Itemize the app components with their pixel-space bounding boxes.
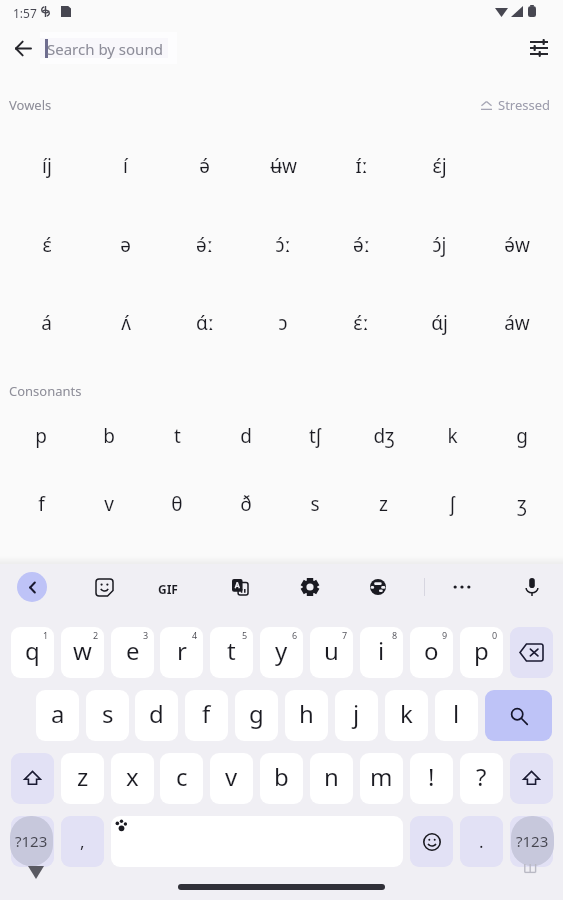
button[interactable]: d [211, 406, 280, 466]
button[interactable]: Stressed [481, 96, 551, 114]
staticText: s [102, 697, 114, 730]
button[interactable]: Emoji [410, 816, 453, 867]
button[interactable]: Search [485, 690, 552, 741]
button[interactable]: ə́ː [322, 215, 400, 275]
button[interactable]: íj [7, 136, 86, 196]
staticText: n [324, 760, 339, 793]
button[interactable]: u [310, 627, 353, 678]
button[interactable]: k [385, 690, 428, 741]
button[interactable]: ə́w [478, 215, 556, 275]
button[interactable]: tʃ [280, 406, 349, 466]
button[interactable]: á [7, 293, 86, 353]
button[interactable]: r [160, 627, 203, 678]
button[interactable]: e [111, 627, 154, 678]
button[interactable]: b [260, 753, 303, 804]
button[interactable]: θ [143, 474, 211, 534]
button[interactable]: d [135, 690, 178, 741]
button[interactable]: Symbols [511, 816, 554, 866]
button[interactable]: í [86, 136, 165, 196]
button[interactable]: ə [86, 215, 165, 275]
button[interactable]: Back [5, 30, 41, 66]
button[interactable]: ɛ́ [7, 215, 86, 275]
button[interactable]: áw [478, 293, 556, 353]
button[interactable]: GIF [151, 572, 185, 606]
button[interactable]: ! [410, 753, 453, 804]
staticText: ? [476, 760, 487, 793]
button[interactable]: k [418, 406, 487, 466]
button[interactable]: i [360, 627, 403, 678]
button[interactable]: Symbols [10, 816, 53, 866]
button[interactable]: ʃ [418, 474, 487, 534]
button[interactable]: Shift [11, 753, 54, 804]
button[interactable]: Shift [510, 753, 553, 804]
button[interactable]: ʒ [487, 474, 556, 534]
button[interactable]: a [36, 690, 79, 741]
button[interactable]: Search filters [520, 29, 558, 67]
button[interactable]: Theme [361, 570, 395, 604]
button[interactable]: b [75, 406, 143, 466]
button[interactable]: p [460, 627, 503, 678]
button[interactable]: s [280, 474, 349, 534]
button[interactable]: . [460, 816, 503, 867]
button[interactable]: c [160, 753, 203, 804]
button[interactable]: Symbols [11, 816, 54, 867]
button[interactable]: o [410, 627, 453, 678]
button[interactable]: g [487, 406, 556, 466]
button[interactable]: z [61, 753, 104, 804]
staticText: h [299, 697, 314, 730]
staticText: ə́ː [196, 232, 213, 258]
button[interactable]: p [7, 406, 75, 466]
staticText: u [324, 634, 339, 667]
button[interactable]: z [349, 474, 418, 534]
button[interactable]: g [235, 690, 278, 741]
button[interactable]: ɔ́j [400, 215, 478, 275]
staticText: 5 [242, 629, 248, 641]
button[interactable]: ɪ́ː [322, 136, 400, 196]
button[interactable]: Symbols [510, 816, 553, 867]
button[interactable]: f [185, 690, 228, 741]
button[interactable]: ɑ́j [400, 293, 478, 353]
staticText: 9 [442, 629, 448, 641]
button[interactable]: ɔ́ː [244, 215, 322, 275]
button[interactable]: s [86, 690, 129, 741]
button[interactable]: q [11, 627, 54, 678]
button[interactable]: ? [460, 753, 503, 804]
button[interactable]: Settings [293, 570, 327, 604]
button[interactable]: ʌ́ [86, 293, 165, 353]
button[interactable]: Space [111, 816, 403, 867]
button[interactable]: ɔ [244, 293, 322, 353]
button[interactable]: Backspace [510, 627, 553, 678]
staticText: k [400, 697, 413, 730]
button[interactable]: t [210, 627, 253, 678]
button[interactable]: ə́ː [165, 215, 244, 275]
button[interactable]: , [61, 816, 104, 867]
button[interactable]: j [335, 690, 378, 741]
button[interactable]: ɛ́j [400, 136, 478, 196]
button[interactable]: Back [17, 572, 47, 602]
button[interactable]: x [111, 753, 154, 804]
staticText: ɔ́j [432, 232, 447, 258]
button[interactable]: v [75, 474, 143, 534]
button[interactable]: y [260, 627, 303, 678]
button[interactable]: f [7, 474, 75, 534]
button[interactable]: l [435, 690, 478, 741]
button[interactable]: ɛ́ː [322, 293, 400, 353]
button[interactable]: h [285, 690, 328, 741]
button[interactable]: v [210, 753, 253, 804]
button[interactable]: Stickers [87, 570, 121, 604]
button[interactable]: Translate [223, 570, 257, 604]
button[interactable]: w [61, 627, 104, 678]
button[interactable]: Voice input [515, 570, 549, 604]
button[interactable]: More options [445, 570, 479, 604]
button[interactable]: n [310, 753, 353, 804]
button[interactable]: ɑ́ː [165, 293, 244, 353]
staticText: j [353, 697, 360, 730]
button[interactable]: dʒ [349, 406, 418, 466]
button[interactable]: ə́ [165, 136, 244, 196]
button[interactable]: ʉ́w [244, 136, 322, 196]
button[interactable]: ð [211, 474, 280, 534]
staticText: í [123, 153, 128, 179]
button[interactable]: t [143, 406, 211, 466]
button[interactable]: m [360, 753, 403, 804]
